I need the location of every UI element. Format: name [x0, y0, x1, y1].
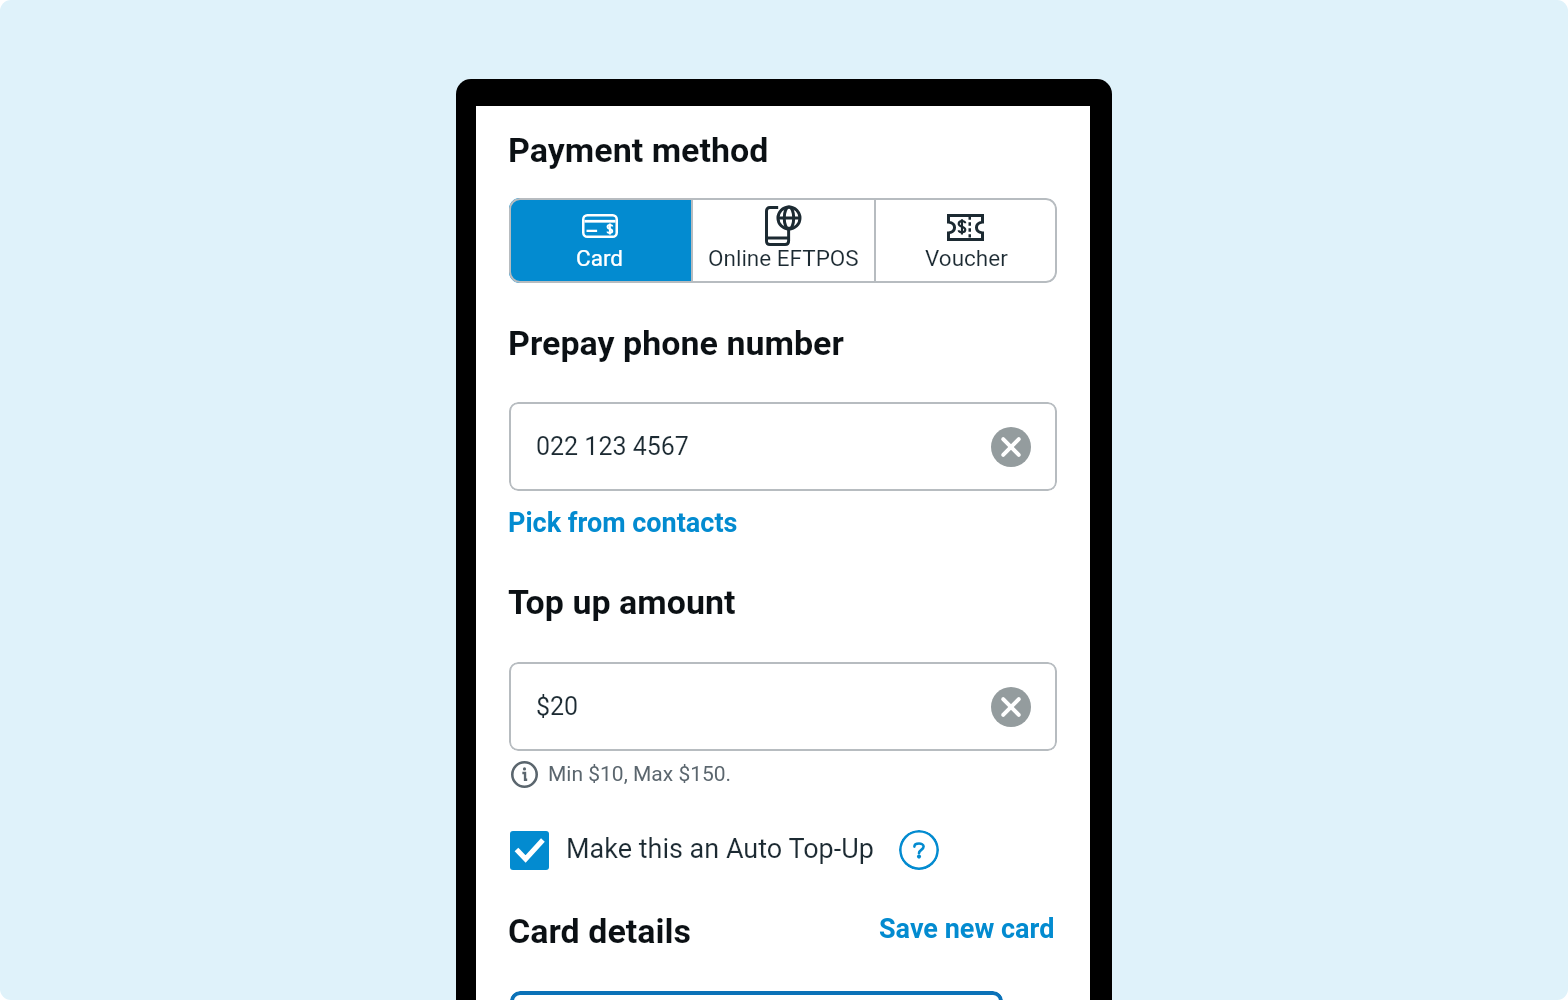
staticText: Prepay phone number — [508, 323, 844, 363]
staticText: Card — [576, 245, 623, 271]
button[interactable]: Pick from contacts — [508, 507, 738, 539]
staticText: Online EFTPOS — [708, 245, 859, 271]
staticText: Voucher — [925, 245, 1008, 271]
button[interactable] — [510, 991, 1003, 1000]
staticText: Min $10, Max $150. — [548, 762, 732, 787]
button[interactable]: Card — [509, 198, 691, 283]
button[interactable]: Clear — [991, 687, 1031, 727]
button[interactable]: Help about auto top up — [899, 830, 939, 870]
staticText: Payment method — [508, 130, 769, 170]
button[interactable]: Voucher — [874, 198, 1057, 283]
button[interactable]: 022 123 4567 — [509, 402, 1057, 491]
button[interactable]: Online EFTPOS — [691, 198, 873, 283]
button[interactable]: $20 — [509, 662, 1057, 751]
staticText: Top up amount — [508, 582, 736, 622]
button[interactable]: Make this an Auto Top-Up — [510, 831, 549, 870]
staticText: Card details — [508, 911, 692, 951]
staticText: Make this an Auto Top-Up — [566, 833, 874, 865]
staticText: 022 123 4567 — [536, 432, 689, 461]
button[interactable]: Save new card — [879, 913, 1055, 945]
button[interactable]: Clear — [991, 427, 1031, 467]
staticText: $20 — [536, 692, 579, 721]
